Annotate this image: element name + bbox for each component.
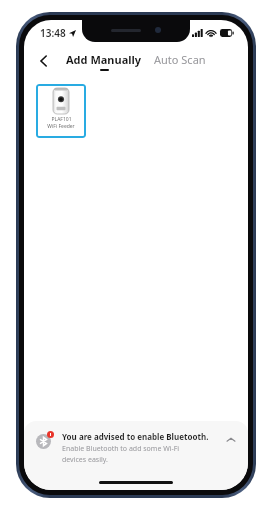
staticText: You are advised to enable Bluetooth. xyxy=(62,431,209,442)
staticText: PLAF101 xyxy=(51,116,72,123)
staticText: 13:48 xyxy=(40,26,66,40)
button[interactable]: You are advised to enable Bluetooth. xyxy=(24,421,248,474)
button[interactable]: Add Manually xyxy=(66,52,142,71)
button[interactable]: Auto Scan xyxy=(154,52,206,67)
staticText: WiFi Feeder xyxy=(47,123,75,130)
staticText: Auto Scan xyxy=(154,52,206,67)
button[interactable]: PLAF101 xyxy=(36,84,86,138)
staticText: Add Manually xyxy=(66,52,142,67)
button[interactable]: Collapse xyxy=(224,433,238,447)
button[interactable]: Back xyxy=(32,49,56,73)
staticText: Enable Bluetooth to add some Wi-Fi devic… xyxy=(62,444,180,464)
